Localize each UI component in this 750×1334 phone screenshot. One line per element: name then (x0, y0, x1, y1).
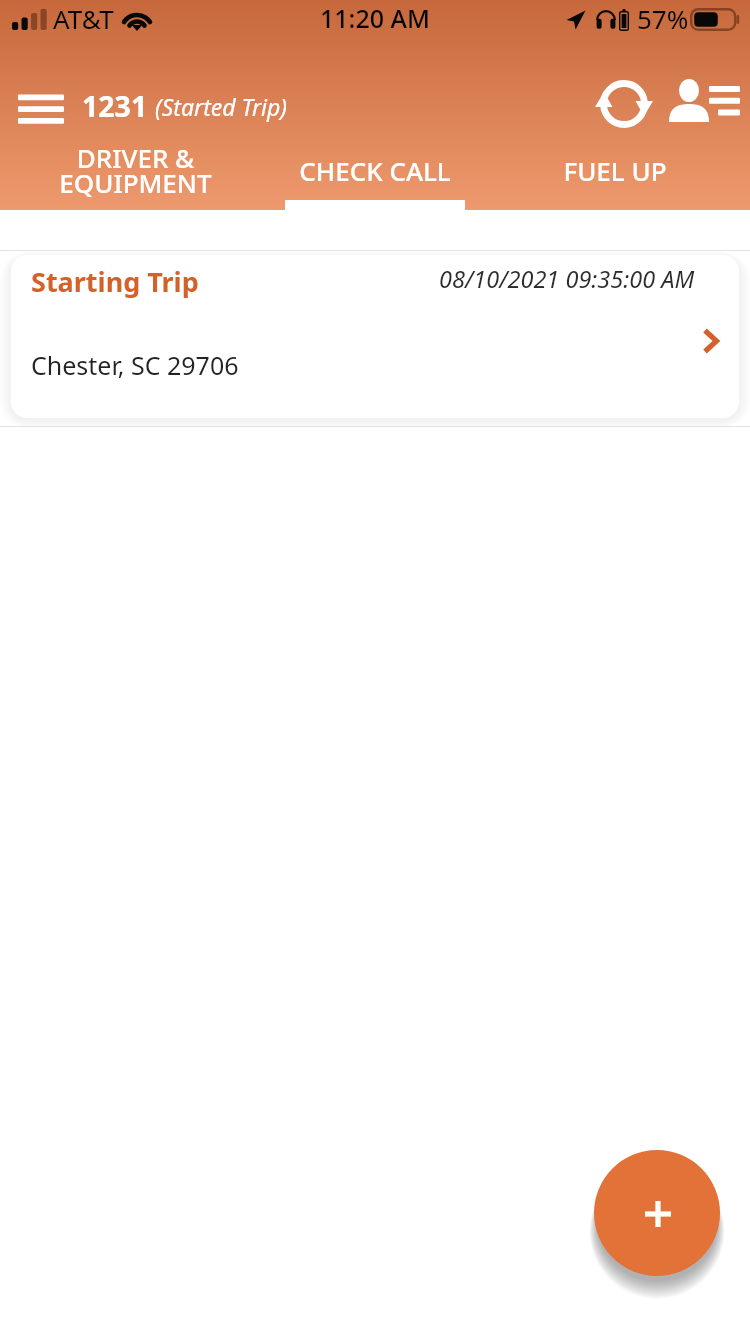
button[interactable]: Sync (588, 68, 660, 140)
staticText: AT&T (53, 1, 114, 36)
staticText: 08/10/2021 09:35:00 AM (439, 263, 695, 295)
button[interactable]: DRIVER & EQUIPMENT (15, 136, 255, 204)
button[interactable]: Driver list (667, 66, 750, 138)
staticText: (Started Trip) (155, 91, 287, 122)
staticText: 57% (637, 1, 689, 36)
staticText: CHECK CALL (299, 153, 451, 188)
staticText: 1231 (82, 87, 148, 126)
button[interactable]: Starting Trip (11, 255, 739, 418)
staticText: Chester, SC 29706 (31, 348, 239, 382)
staticText: 11:20 AM (320, 1, 430, 35)
button[interactable]: FUEL UP (495, 136, 735, 204)
button[interactable]: Add check call (594, 1150, 720, 1276)
button[interactable]: Menu (4, 84, 77, 134)
button[interactable]: CHECK CALL (255, 136, 495, 204)
staticText: FUEL UP (563, 153, 667, 188)
staticText: DRIVER & EQUIPMENT (59, 140, 212, 200)
staticText: Starting Trip (31, 263, 199, 300)
